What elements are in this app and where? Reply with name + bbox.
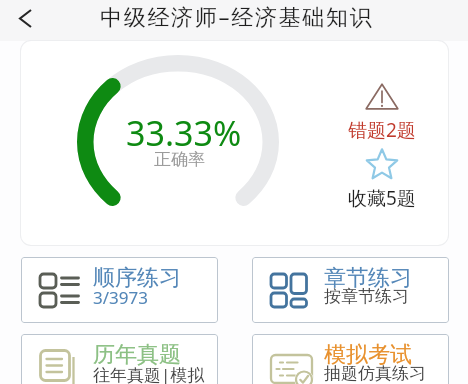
staticText: 收藏5题 (348, 185, 416, 211)
staticText: 33.33% (126, 110, 242, 156)
button[interactable]: 收藏5题 (339, 148, 425, 244)
staticText: 正确率 (154, 149, 205, 170)
staticText: 顺序练习 (93, 264, 181, 292)
staticText: 按章节练习 (324, 286, 409, 307)
button[interactable]: Back (7, 0, 43, 36)
button[interactable]: 章节练习 (252, 257, 449, 323)
staticText: 错题2题 (348, 117, 416, 143)
staticText: 模拟考试 (324, 341, 412, 369)
staticText: 往年真题|模拟 (93, 363, 205, 384)
button[interactable]: 模拟考试 (252, 334, 449, 384)
button[interactable]: 错题2题 (339, 83, 425, 183)
staticText: 3/3973 (93, 286, 148, 309)
staticText: 历年真题 (93, 341, 181, 369)
staticText: 中级经济师–经济基础知识 (100, 1, 374, 31)
button[interactable]: 历年真题 (21, 334, 218, 384)
staticText: 章节练习 (324, 264, 412, 292)
staticText: 抽题仿真练习 (324, 363, 426, 384)
button[interactable]: 顺序练习 (21, 257, 218, 323)
